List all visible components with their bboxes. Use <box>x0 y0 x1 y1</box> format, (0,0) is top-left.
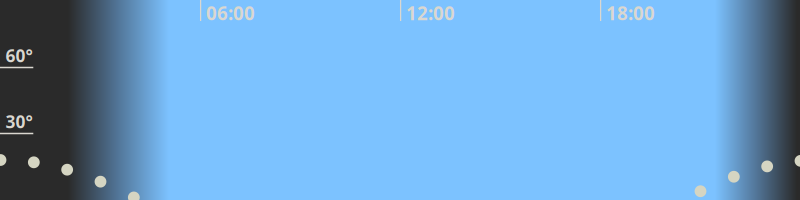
staticText: 60° <box>5 44 32 67</box>
staticText: 30° <box>5 110 32 133</box>
staticText: 12:00 <box>406 1 455 25</box>
staticText: 06:00 <box>206 1 255 25</box>
button[interactable]: 24-hour temperature forecast <box>0 0 800 200</box>
staticText: 18:00 <box>606 1 655 25</box>
